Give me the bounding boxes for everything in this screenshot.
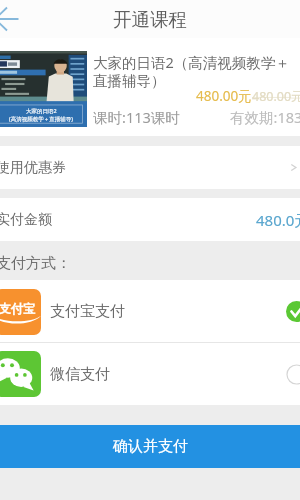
button[interactable]: 支付宝	[0, 280, 300, 343]
staticText: 使用优惠券	[0, 159, 66, 177]
button[interactable]: 使用优惠券	[0, 146, 300, 189]
staticText: 支付宝支付	[50, 302, 125, 321]
staticText: 大家的日语2	[26, 107, 57, 115]
staticText: 确认并支付	[113, 437, 188, 456]
staticText: (高清视频教学＋直播辅导)	[9, 115, 73, 123]
staticText: 有效期:183天	[230, 107, 300, 127]
staticText: 480.00元	[196, 87, 252, 105]
staticText: 课时:113课时	[93, 107, 180, 127]
button[interactable]: 确认并支付	[0, 425, 300, 468]
button[interactable]: Back	[0, 0, 40, 38]
staticText: 480.00元	[252, 88, 300, 105]
staticText: 微信支付	[50, 365, 110, 384]
staticText: 直播辅导）	[93, 72, 166, 90]
button[interactable]: 微信支付	[0, 343, 300, 405]
staticText: 开通课程	[113, 8, 187, 31]
staticText: 480.0元	[256, 210, 300, 230]
staticText: 大家的日语2（高清视频教学＋	[93, 52, 290, 72]
staticText: 实付金额	[0, 211, 52, 229]
staticText: 支付宝	[0, 301, 35, 316]
staticText: 支付方式：	[0, 254, 71, 273]
